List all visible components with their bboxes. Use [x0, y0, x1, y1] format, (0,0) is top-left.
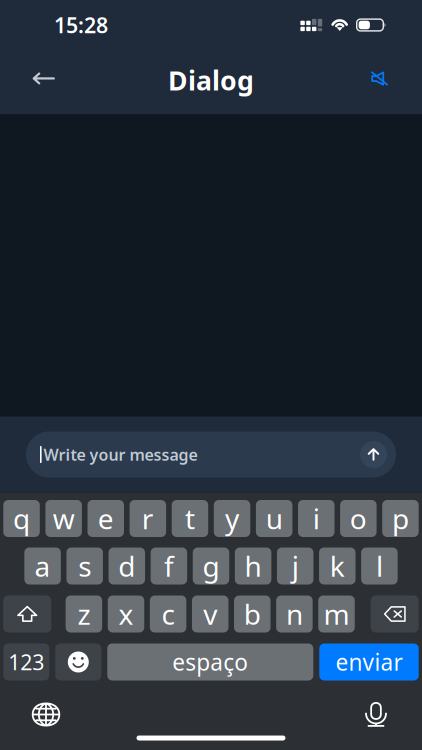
button[interactable]: e [87, 500, 124, 537]
staticText: enviar [335, 647, 402, 677]
staticText: m [323, 595, 349, 633]
button[interactable]: 123 [3, 643, 49, 680]
button[interactable]: Shift [3, 595, 51, 632]
staticText: i [313, 500, 320, 537]
button[interactable]: d [108, 547, 145, 584]
button[interactable]: p [382, 500, 419, 537]
button[interactable]: Emoji [55, 643, 101, 680]
button[interactable]: k [319, 547, 355, 584]
button[interactable]: q [3, 500, 40, 537]
staticText: j [292, 547, 299, 585]
staticText: a [35, 547, 51, 585]
staticText: t [185, 500, 195, 537]
staticText: r [142, 500, 154, 537]
button[interactable]: j [277, 547, 313, 584]
button[interactable]: enviar [319, 643, 419, 680]
button[interactable]: a [24, 547, 61, 584]
staticText: o [350, 500, 367, 537]
button[interactable]: Back [22, 56, 66, 100]
button[interactable]: t [172, 500, 208, 537]
button[interactable]: c [150, 595, 186, 632]
staticText: g [202, 547, 219, 585]
button[interactable]: o [340, 500, 377, 537]
button[interactable]: r [130, 500, 166, 537]
button[interactable]: Mute notifications [357, 56, 401, 100]
button[interactable]: espaço [107, 643, 313, 680]
button[interactable]: w [45, 500, 82, 537]
button[interactable]: i [298, 500, 334, 537]
button[interactable]: h [235, 547, 271, 584]
staticText: 123 [8, 648, 44, 676]
staticText: q [13, 500, 30, 537]
button[interactable]: Delete [371, 595, 419, 632]
staticText: Write your message [44, 444, 198, 465]
button[interactable]: g [193, 547, 229, 584]
staticText: e [98, 500, 114, 537]
staticText: s [78, 547, 91, 585]
staticText: c [162, 595, 175, 633]
button[interactable]: n [276, 595, 313, 632]
button[interactable]: m [318, 595, 355, 632]
button[interactable]: x [108, 595, 144, 632]
button[interactable]: b [234, 595, 271, 632]
staticText: w [53, 500, 75, 537]
staticText: f [164, 547, 174, 585]
staticText: h [245, 547, 262, 585]
button[interactable]: Next keyboard [24, 701, 68, 727]
button[interactable]: l [361, 547, 398, 584]
button[interactable]: u [256, 500, 292, 537]
button[interactable]: f [151, 547, 187, 584]
staticText: b [244, 595, 261, 633]
staticText: Dialog [168, 62, 254, 98]
button[interactable]: y [214, 500, 250, 537]
staticText: y [225, 500, 239, 537]
staticText: z [77, 595, 90, 633]
button[interactable]: z [66, 595, 102, 632]
staticText: u [266, 500, 283, 537]
staticText: 15:28 [54, 11, 108, 39]
staticText: espaço [172, 647, 248, 677]
button[interactable]: Dictate [354, 701, 398, 727]
button[interactable]: s [66, 547, 103, 584]
button[interactable]: v [192, 595, 228, 632]
staticText: p [392, 500, 409, 537]
button[interactable]: Send message [360, 441, 387, 468]
staticText: v [203, 595, 217, 633]
staticText: l [376, 547, 383, 585]
staticText: k [330, 547, 345, 585]
staticText: n [286, 595, 303, 633]
staticText: x [118, 595, 133, 633]
staticText: d [118, 547, 135, 585]
